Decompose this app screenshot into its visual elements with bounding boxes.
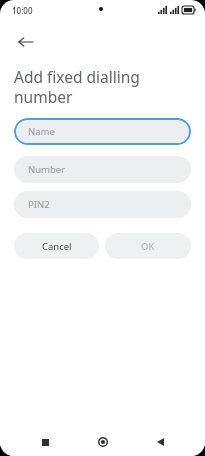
button[interactable]: Back bbox=[149, 431, 171, 453]
staticText: Cancel bbox=[42, 240, 72, 253]
button[interactable]: PIN2 bbox=[14, 191, 191, 218]
button[interactable]: Recent apps bbox=[34, 431, 56, 453]
button[interactable]: Back bbox=[8, 24, 44, 60]
button[interactable]: Home bbox=[92, 431, 114, 453]
button[interactable]: Name bbox=[14, 118, 191, 145]
staticText: PIN2 bbox=[28, 198, 50, 211]
button[interactable]: Number bbox=[14, 156, 191, 183]
button[interactable]: Cancel bbox=[14, 233, 99, 259]
staticText: Name bbox=[28, 125, 55, 138]
button[interactable]: OK bbox=[105, 233, 191, 259]
staticText: OK bbox=[141, 240, 155, 253]
staticText: 10:00 bbox=[12, 5, 33, 16]
staticText: Add fixed dialling number bbox=[14, 66, 177, 107]
staticText: Number bbox=[28, 163, 66, 176]
